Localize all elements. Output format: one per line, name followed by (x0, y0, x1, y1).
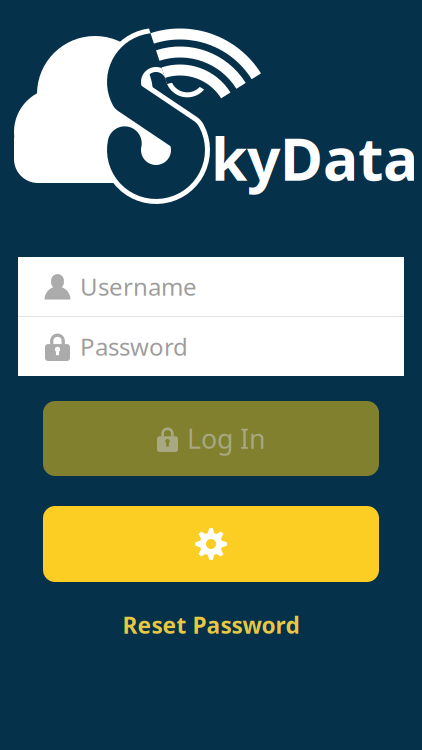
staticText: kyData (211, 119, 418, 197)
staticText: Log In (187, 421, 265, 456)
button[interactable]: Log In (43, 401, 379, 476)
button[interactable]: Settings (43, 506, 379, 582)
staticText: Password (80, 331, 188, 362)
staticText: Reset Password (122, 610, 299, 640)
button[interactable]: Reset Password (122, 610, 299, 640)
staticText: Username (80, 271, 197, 302)
